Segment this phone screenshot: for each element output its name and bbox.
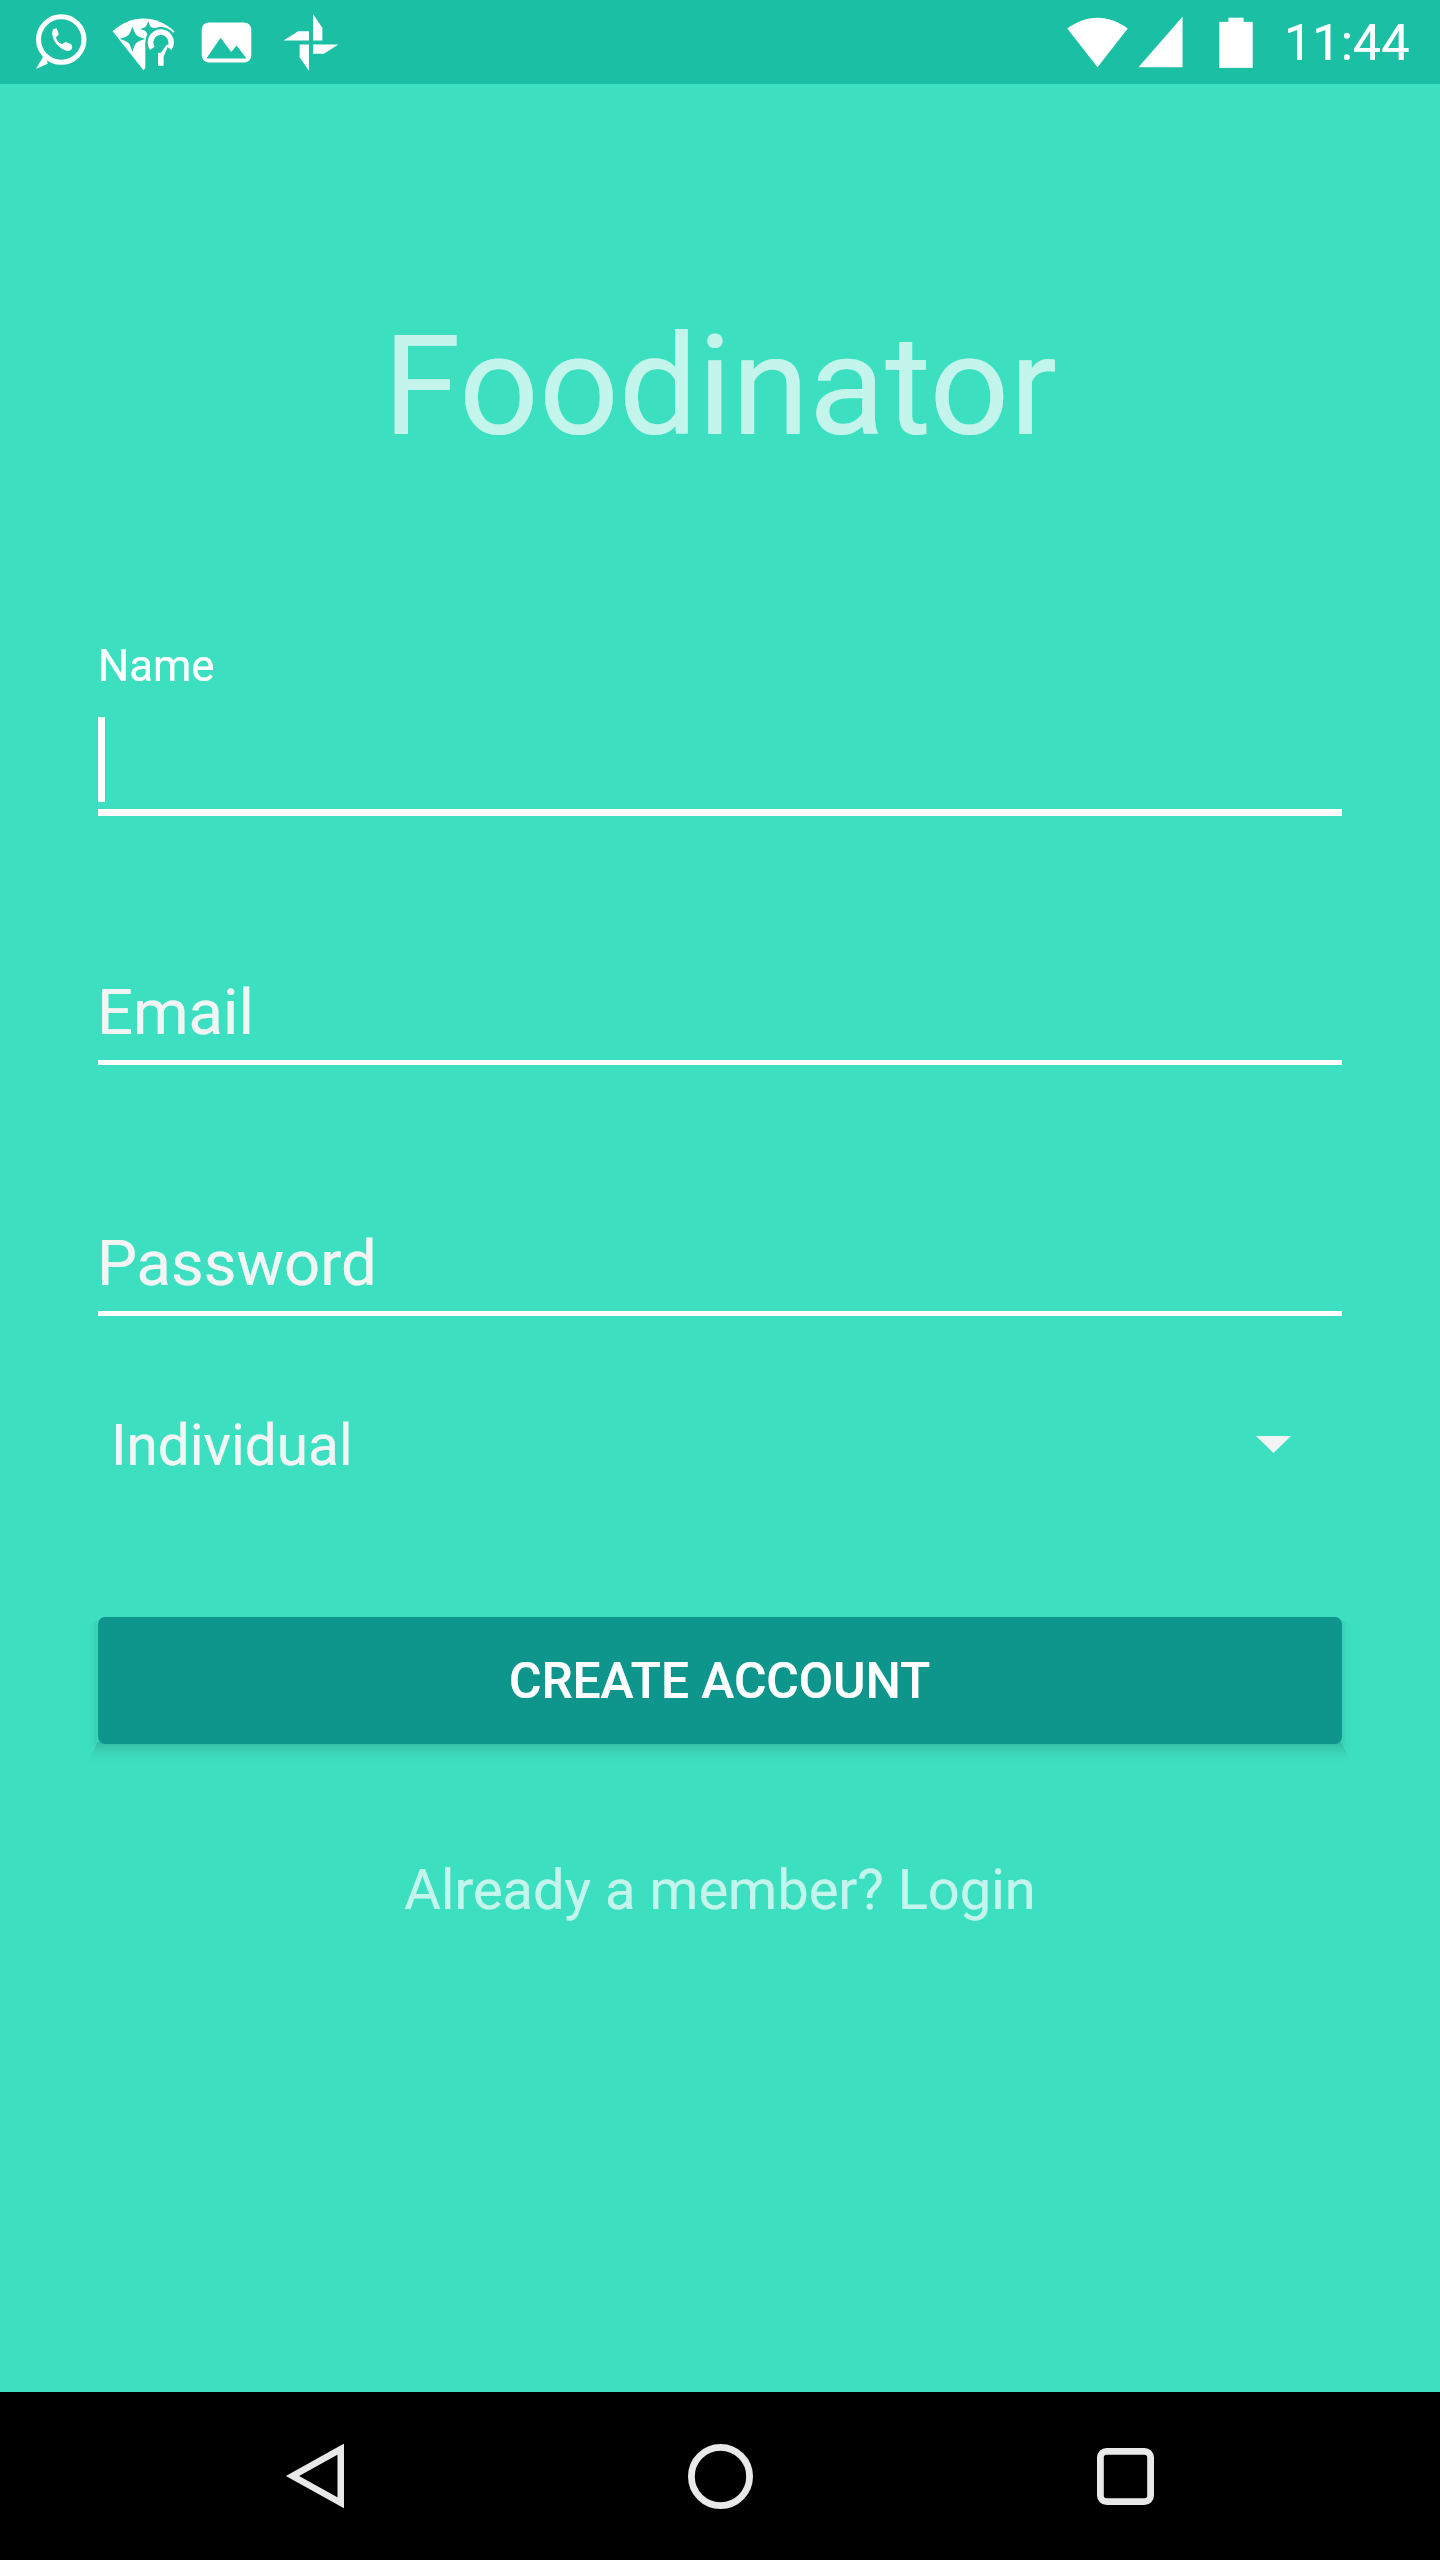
- button[interactable]: Back: [113, 2392, 518, 2560]
- button[interactable]: Name: [98, 707, 1342, 816]
- button[interactable]: Home: [518, 2392, 923, 2560]
- staticText: Individual: [111, 1412, 353, 1478]
- button[interactable]: Password: [98, 1226, 1342, 1316]
- button[interactable]: Individual: [98, 1385, 1342, 1504]
- button[interactable]: CREATE ACCOUNT: [98, 1617, 1342, 1744]
- button[interactable]: Recent apps: [923, 2392, 1328, 2560]
- staticText: Password: [97, 1226, 377, 1300]
- button[interactable]: Already a member? Login: [0, 1844, 1440, 1935]
- staticText: CREATE ACCOUNT: [509, 1652, 931, 1710]
- staticText: Already a member? Login: [404, 1857, 1036, 1923]
- staticText: Foodinator: [0, 304, 1440, 468]
- staticText: Email: [97, 975, 254, 1049]
- staticText: 11:44: [1284, 13, 1410, 72]
- staticText: Name: [98, 640, 215, 691]
- button[interactable]: Email: [98, 975, 1342, 1065]
